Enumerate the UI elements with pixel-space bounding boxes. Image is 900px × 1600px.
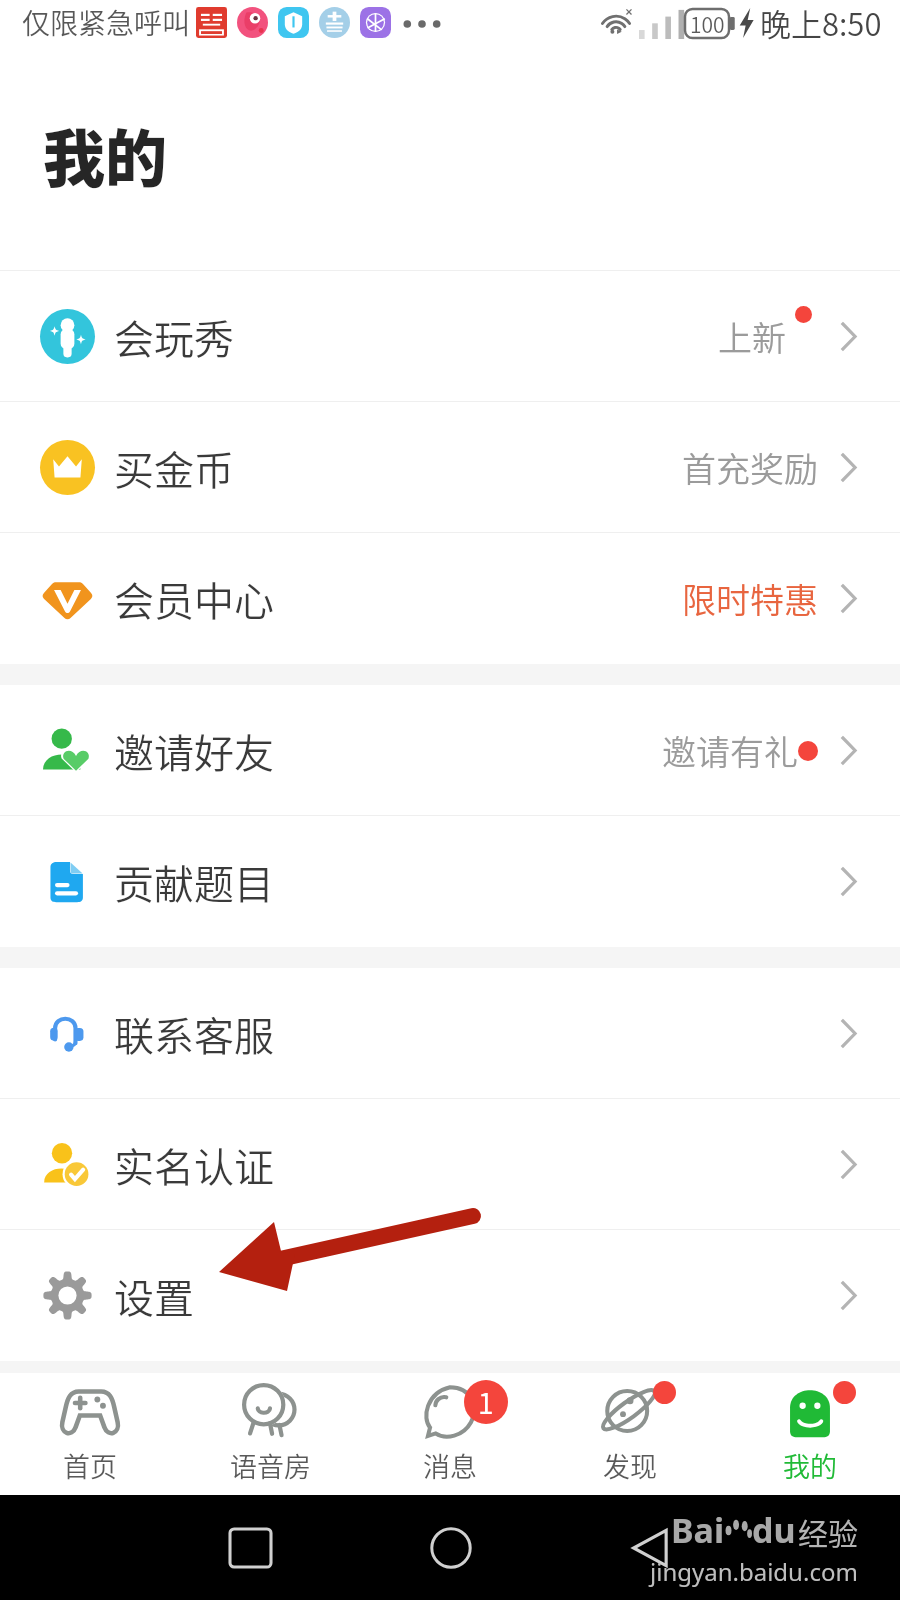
button[interactable]: 会玩秀 (0, 271, 900, 402)
button[interactable]: Voice room tab (180, 1373, 360, 1495)
staticText: 经验 (798, 1510, 858, 1553)
staticText: 联系客服 (114, 1005, 274, 1063)
staticText: 设置 (114, 1267, 194, 1325)
staticText: 100 (690, 9, 725, 38)
button[interactable]: 贡献题目 (0, 816, 900, 947)
staticText: 会员中心 (114, 570, 274, 628)
staticText: 邀请好友 (114, 722, 274, 780)
staticText: 实名认证 (114, 1136, 274, 1194)
staticText: 我的 (43, 110, 168, 200)
staticText: Bai (671, 1507, 725, 1553)
button[interactable]: 买金币 (0, 402, 900, 533)
staticText: du (752, 1507, 796, 1553)
button[interactable]: Messages tab (360, 1373, 540, 1495)
staticText: 会玩秀 (114, 308, 234, 366)
button[interactable]: Home tab (0, 1373, 180, 1495)
button[interactable]: 会员中心 (0, 533, 900, 664)
staticText: 发现 (603, 1446, 657, 1485)
staticText: 我的 (783, 1446, 837, 1485)
staticText: 消息 (423, 1446, 477, 1485)
button[interactable]: Discover tab (540, 1373, 720, 1495)
staticText: 首页 (63, 1446, 117, 1485)
staticText: 语音房 (230, 1446, 311, 1485)
button[interactable]: Back (599, 1495, 699, 1600)
staticText: 贡献题目 (114, 853, 274, 911)
button[interactable]: Recents (200, 1495, 300, 1600)
staticText: jingyan.baidu.com (650, 1555, 858, 1588)
staticText: 邀请有礼 (662, 726, 798, 775)
staticText: 晚上8:50 (760, 0, 882, 45)
button[interactable]: 联系客服 (0, 968, 900, 1099)
button[interactable]: Mine tab (720, 1373, 900, 1495)
staticText: 首充奖励 (682, 443, 818, 492)
staticText: 买金币 (114, 439, 234, 497)
button[interactable]: 实名认证 (0, 1099, 900, 1230)
staticText: 限时特惠 (682, 574, 818, 623)
button[interactable]: Home (401, 1495, 501, 1600)
button[interactable]: 邀请好友 (0, 685, 900, 816)
staticText: 上新 (718, 312, 786, 361)
button[interactable]: 设置 (0, 1230, 900, 1361)
staticText: 1 (478, 1382, 494, 1423)
staticText: 仅限紧急呼叫 (22, 2, 191, 43)
